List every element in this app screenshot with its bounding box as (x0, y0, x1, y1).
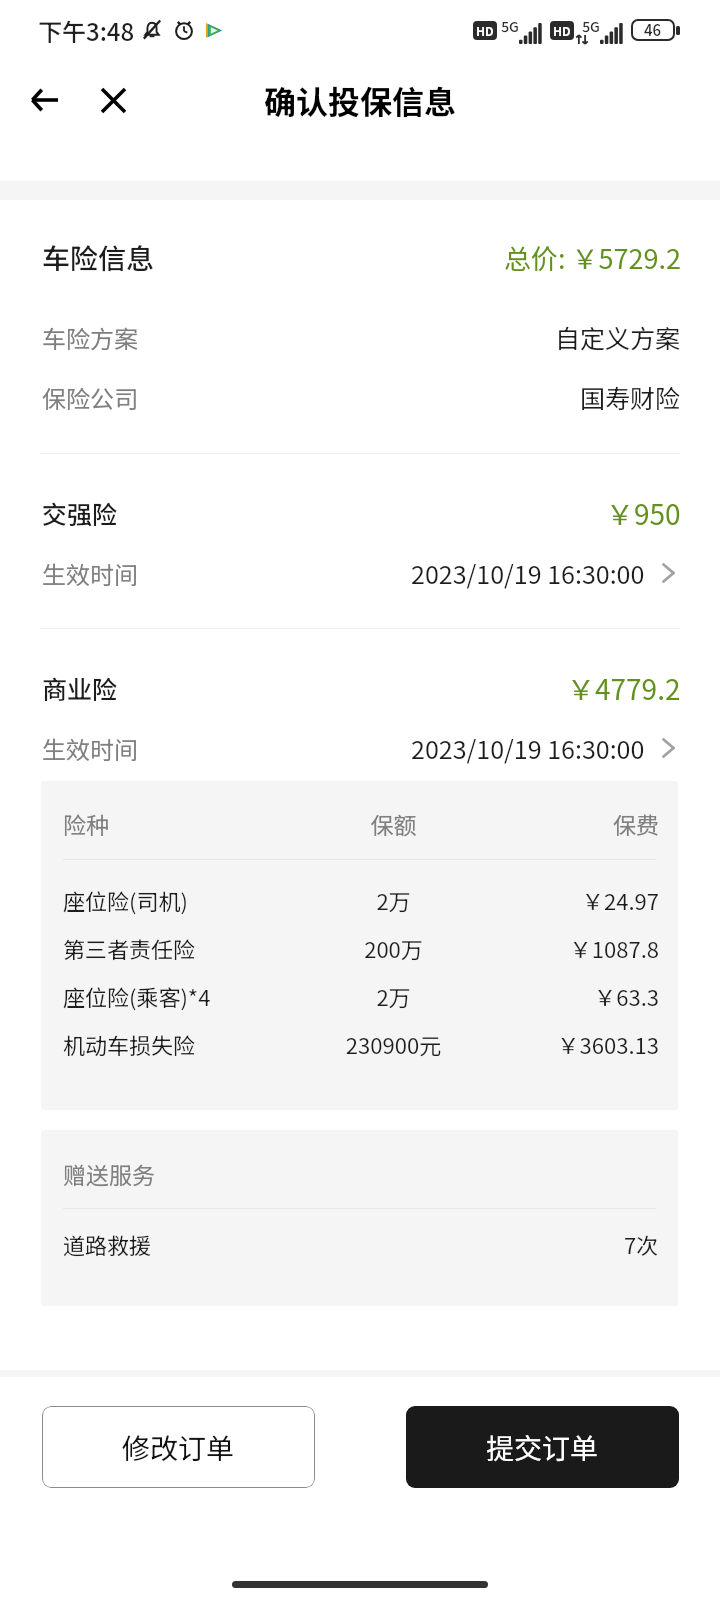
button[interactable]: Close (91, 78, 135, 122)
staticText: 保险公司 (42, 380, 138, 415)
staticText: 赠送服务 (63, 1157, 155, 1190)
staticText: 提交订单 (486, 1427, 599, 1468)
staticText: HD (476, 22, 494, 39)
staticText: 第三者责任险 (63, 932, 305, 964)
staticText: 修改订单 (122, 1427, 235, 1468)
staticText: ￥3603.13 (482, 1028, 659, 1060)
staticText: 险种 (63, 807, 305, 840)
staticText: 座位险(司机) (63, 884, 305, 916)
staticText: 交强险 (42, 495, 118, 531)
staticText: 车险信息 (42, 237, 155, 278)
staticText: 2万 (305, 980, 482, 1012)
staticText: 总价: ￥5729.2 (504, 238, 681, 277)
staticText: 车险方案 (42, 320, 138, 355)
staticText: 下午3:48 (38, 13, 135, 48)
button[interactable]: 生效时间 (0, 718, 720, 778)
staticText: HD (553, 22, 571, 39)
staticText: 2023/10/19 16:30:00 (411, 730, 645, 766)
staticText: ￥4779.2 (567, 668, 681, 709)
button[interactable]: Back (22, 78, 66, 122)
staticText: 商业险 (42, 670, 118, 706)
staticText: 确认投保信息 (264, 77, 457, 123)
staticText: 2万 (305, 884, 482, 916)
staticText: 7次 (624, 1228, 659, 1260)
staticText: 国寿财险 (580, 379, 681, 415)
button[interactable]: 修改订单 (42, 1406, 315, 1488)
button[interactable]: 提交订单 (406, 1406, 679, 1488)
staticText: ￥63.3 (482, 980, 659, 1012)
staticText: 46 (644, 19, 662, 41)
staticText: ￥950 (606, 493, 681, 534)
staticText: ￥24.97 (482, 884, 659, 916)
staticText: 230900元 (305, 1028, 482, 1060)
staticText: 2023/10/19 16:30:00 (411, 555, 645, 591)
staticText: 生效时间 (42, 556, 138, 591)
staticText: 座位险(乘客)*4 (63, 980, 305, 1012)
staticText: 5G (501, 16, 519, 36)
staticText: 200万 (305, 932, 482, 964)
staticText: 保额 (305, 807, 482, 840)
button[interactable]: 生效时间 (0, 543, 720, 603)
staticText: 自定义方案 (555, 319, 681, 355)
staticText: 保费 (482, 807, 659, 840)
staticText: 道路救援 (63, 1228, 152, 1260)
staticText: 生效时间 (42, 731, 138, 766)
staticText: 5G (582, 16, 600, 36)
staticText: 机动车损失险 (63, 1028, 305, 1060)
staticText: ￥1087.8 (482, 932, 659, 964)
